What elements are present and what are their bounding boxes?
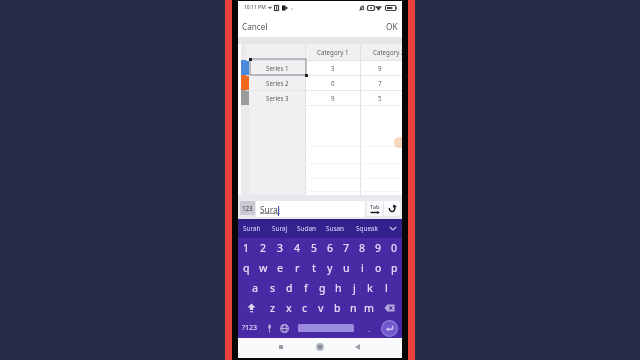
staticText: Series 1 (266, 64, 289, 72)
staticText: d (286, 281, 293, 295)
button[interactable]: 9 (370, 238, 386, 258)
staticText: b (334, 301, 341, 315)
button[interactable]: 0 (386, 238, 402, 258)
button[interactable]: e (272, 258, 289, 278)
button[interactable]: q (238, 258, 255, 278)
button[interactable]: c (297, 298, 313, 318)
button[interactable]: i (354, 258, 370, 278)
button[interactable]: OK (381, 15, 402, 37)
button[interactable]: g (314, 278, 330, 298)
button[interactable]: Cancel (240, 15, 270, 37)
button[interactable]: Redo (384, 201, 400, 216)
button[interactable]: r (289, 258, 306, 278)
button[interactable]: Tab (367, 201, 383, 216)
staticText: h (335, 281, 342, 295)
button[interactable]: ?123 (238, 318, 262, 338)
staticText: 2 (260, 241, 267, 255)
button[interactable]: m (361, 298, 377, 318)
button[interactable]: 3 (272, 238, 289, 258)
button[interactable]: b (329, 298, 345, 318)
button[interactable]: 123 (240, 201, 255, 215)
button[interactable]: Susan (321, 219, 350, 238)
staticText: Tab (370, 203, 380, 211)
button[interactable]: w (255, 258, 272, 278)
staticText: 3 (331, 64, 335, 72)
button[interactable]: 1 (238, 238, 255, 258)
button[interactable]: v (313, 298, 329, 318)
button[interactable]: 5 (306, 238, 322, 258)
staticText: g (319, 281, 326, 295)
button[interactable]: 6 (322, 238, 338, 258)
button[interactable]: Enter (377, 318, 402, 338)
button[interactable]: . (362, 318, 377, 338)
staticText: a (252, 281, 259, 295)
staticText: m (364, 301, 374, 315)
button[interactable]: More suggestions (384, 219, 401, 238)
staticText: 5 (311, 241, 318, 255)
staticText: 123 (242, 204, 253, 212)
button[interactable] (250, 59, 306, 75)
button[interactable]: Back (350, 340, 364, 354)
staticText: Susan (326, 224, 345, 233)
staticText: OK (386, 21, 398, 32)
staticText: 6 (327, 241, 334, 255)
button[interactable]: j (346, 278, 362, 298)
button[interactable]: Switch language (277, 318, 292, 338)
staticText: Suraj (272, 224, 288, 233)
button[interactable]: 4 (289, 238, 306, 258)
staticText: q (243, 261, 250, 275)
button[interactable]: Backspace (377, 298, 402, 318)
staticText: j (353, 281, 356, 295)
staticText: 7 (378, 79, 382, 87)
staticText: u (343, 261, 350, 275)
button[interactable]: l (378, 278, 394, 298)
staticText: 9 (331, 94, 335, 102)
button[interactable]: Suraj (256, 201, 365, 217)
staticText: w (259, 261, 268, 275)
staticText: i (361, 261, 364, 275)
button[interactable]: Surah (238, 219, 265, 238)
button[interactable]: Squeak (351, 219, 382, 238)
staticText: 5 (378, 94, 382, 102)
staticText: e (277, 261, 284, 275)
staticText: n (350, 301, 357, 315)
button[interactable]: p (386, 258, 402, 278)
staticText: k (367, 281, 373, 295)
staticText: Suraj (260, 204, 280, 215)
button[interactable]: 8 (354, 238, 370, 258)
button[interactable]: s (264, 278, 281, 298)
button[interactable]: Sudan (292, 219, 321, 238)
button[interactable]: Home (313, 340, 327, 354)
staticText: 9 (375, 241, 382, 255)
button[interactable]: Recents (274, 340, 288, 354)
staticText: Category 2 (373, 48, 402, 56)
staticText: 1 (243, 241, 250, 255)
button[interactable]: Suraj (266, 219, 293, 238)
button[interactable]: Voice input (262, 318, 277, 338)
button[interactable]: d (281, 278, 298, 298)
button[interactable]: Space (298, 324, 354, 332)
button[interactable]: t (306, 258, 322, 278)
button[interactable]: h (330, 278, 346, 298)
button[interactable]: Shift (238, 298, 264, 318)
button[interactable]: x (281, 298, 297, 318)
button[interactable]: n (345, 298, 361, 318)
button[interactable]: a (247, 278, 264, 298)
button[interactable]: 7 (338, 238, 354, 258)
button[interactable]: k (362, 278, 378, 298)
button[interactable]: Chart handle (394, 137, 402, 148)
staticText: Squeak (356, 224, 378, 233)
staticText: ?123 (242, 323, 258, 333)
button[interactable]: z (264, 298, 281, 318)
button[interactable]: 2 (255, 238, 272, 258)
staticText: f (304, 281, 308, 295)
button[interactable]: y (322, 258, 338, 278)
button[interactable]: u (338, 258, 354, 278)
button[interactable]: o (370, 258, 386, 278)
staticText: Cancel (242, 21, 268, 32)
staticText: t (312, 261, 317, 275)
staticText: l (385, 281, 388, 295)
staticText: Sudan (297, 224, 316, 233)
staticText: 10:11 PM (244, 4, 266, 11)
button[interactable]: f (298, 278, 314, 298)
